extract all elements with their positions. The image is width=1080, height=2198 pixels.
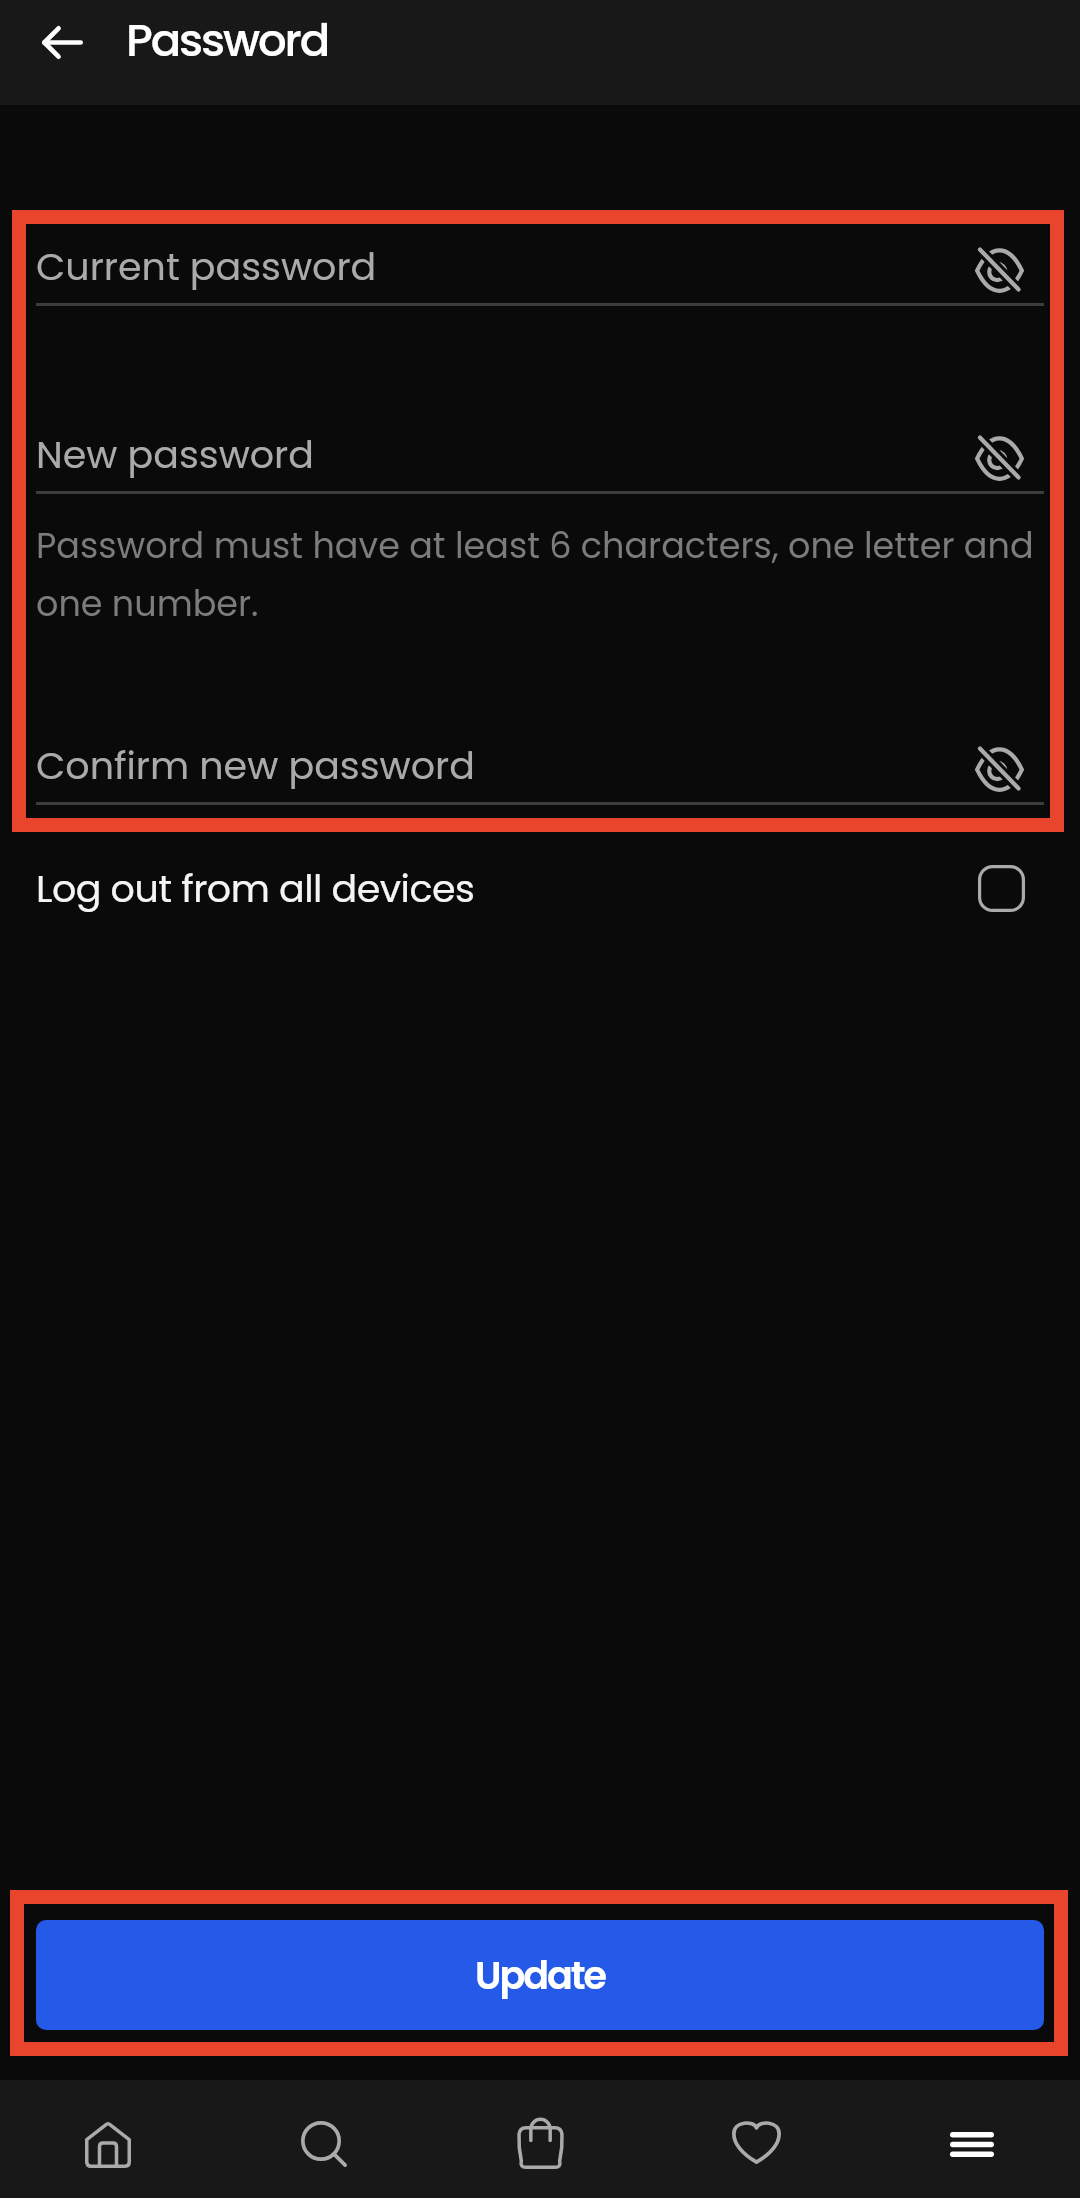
button[interactable]: Current password [36, 229, 1044, 303]
staticText: Password must have at least 6 characters… [36, 521, 1044, 629]
button[interactable]: Log out from all devices [0, 835, 1080, 941]
staticText: Log out from all devices [36, 862, 978, 915]
button[interactable]: Home [0, 2080, 216, 2198]
button[interactable]: New password [36, 417, 1044, 491]
button[interactable]: Search [216, 2080, 432, 2198]
button[interactable]: Shopping bag [432, 2080, 648, 2198]
staticText: Update [475, 1949, 605, 2002]
button[interactable]: Show password [973, 240, 1025, 292]
button[interactable]: Confirm new password [36, 728, 1044, 802]
staticText: Password [126, 9, 329, 72]
button[interactable]: Log out from all devices [978, 865, 1025, 912]
button[interactable]: Update [36, 1920, 1044, 2030]
staticText: New password [36, 428, 973, 481]
button[interactable]: Show password [973, 739, 1025, 791]
button[interactable]: Menu [864, 2080, 1080, 2198]
button[interactable]: Back [26, 6, 98, 78]
staticText: Confirm new password [36, 739, 973, 792]
button[interactable]: Show password [973, 428, 1025, 480]
staticText: Current password [36, 240, 973, 293]
button[interactable]: Favourites [648, 2080, 864, 2198]
